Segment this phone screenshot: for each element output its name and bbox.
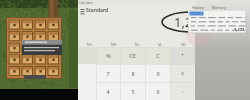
staticText: C	[156, 52, 160, 59]
staticText: 9	[156, 70, 160, 77]
staticText: 8	[131, 70, 135, 77]
staticText: MR	[111, 42, 117, 47]
staticText: CE	[129, 52, 136, 59]
staticText: 1,271	[174, 13, 208, 31]
staticText: Standard	[86, 7, 109, 14]
staticText: M+	[135, 42, 141, 47]
staticText: Calculator	[79, 1, 94, 5]
button[interactable]: MR	[102, 41, 126, 47]
staticText: 7	[106, 70, 110, 77]
staticText: -	[182, 88, 184, 95]
staticText: MC	[87, 42, 93, 47]
button[interactable]: MS	[172, 41, 195, 47]
staticText: +	[181, 52, 184, 59]
button[interactable]: 7	[96, 64, 120, 82]
staticText: 5	[131, 88, 135, 95]
button[interactable]: x	[170, 64, 195, 82]
button[interactable]: MC	[78, 41, 102, 47]
button[interactable]: CE	[120, 47, 145, 64]
staticText: Memory	[212, 5, 226, 10]
staticText: 4	[106, 88, 110, 95]
button[interactable]: Memory	[208, 4, 230, 10]
staticText: x	[181, 70, 184, 77]
button[interactable]: -	[170, 82, 195, 100]
button[interactable]: C	[145, 47, 170, 64]
button[interactable]: M-	[149, 41, 172, 47]
staticText: History	[192, 5, 204, 10]
button[interactable]: %	[96, 47, 120, 64]
button[interactable]: 9	[145, 64, 170, 82]
staticText: 6	[156, 88, 160, 95]
button[interactable]: 5	[120, 82, 145, 100]
button[interactable]: +	[170, 47, 195, 64]
staticText: %	[106, 52, 111, 59]
button[interactable]: M+	[126, 41, 149, 47]
staticText: 1,271	[234, 27, 245, 32]
button[interactable]: History	[188, 4, 208, 10]
button[interactable]: 4	[96, 82, 120, 100]
button[interactable]: 8	[120, 64, 145, 82]
button[interactable]: 6	[145, 82, 170, 100]
staticText: MS	[181, 42, 187, 47]
staticText: M-	[158, 42, 163, 47]
button[interactable]: Menu	[79, 7, 86, 14]
